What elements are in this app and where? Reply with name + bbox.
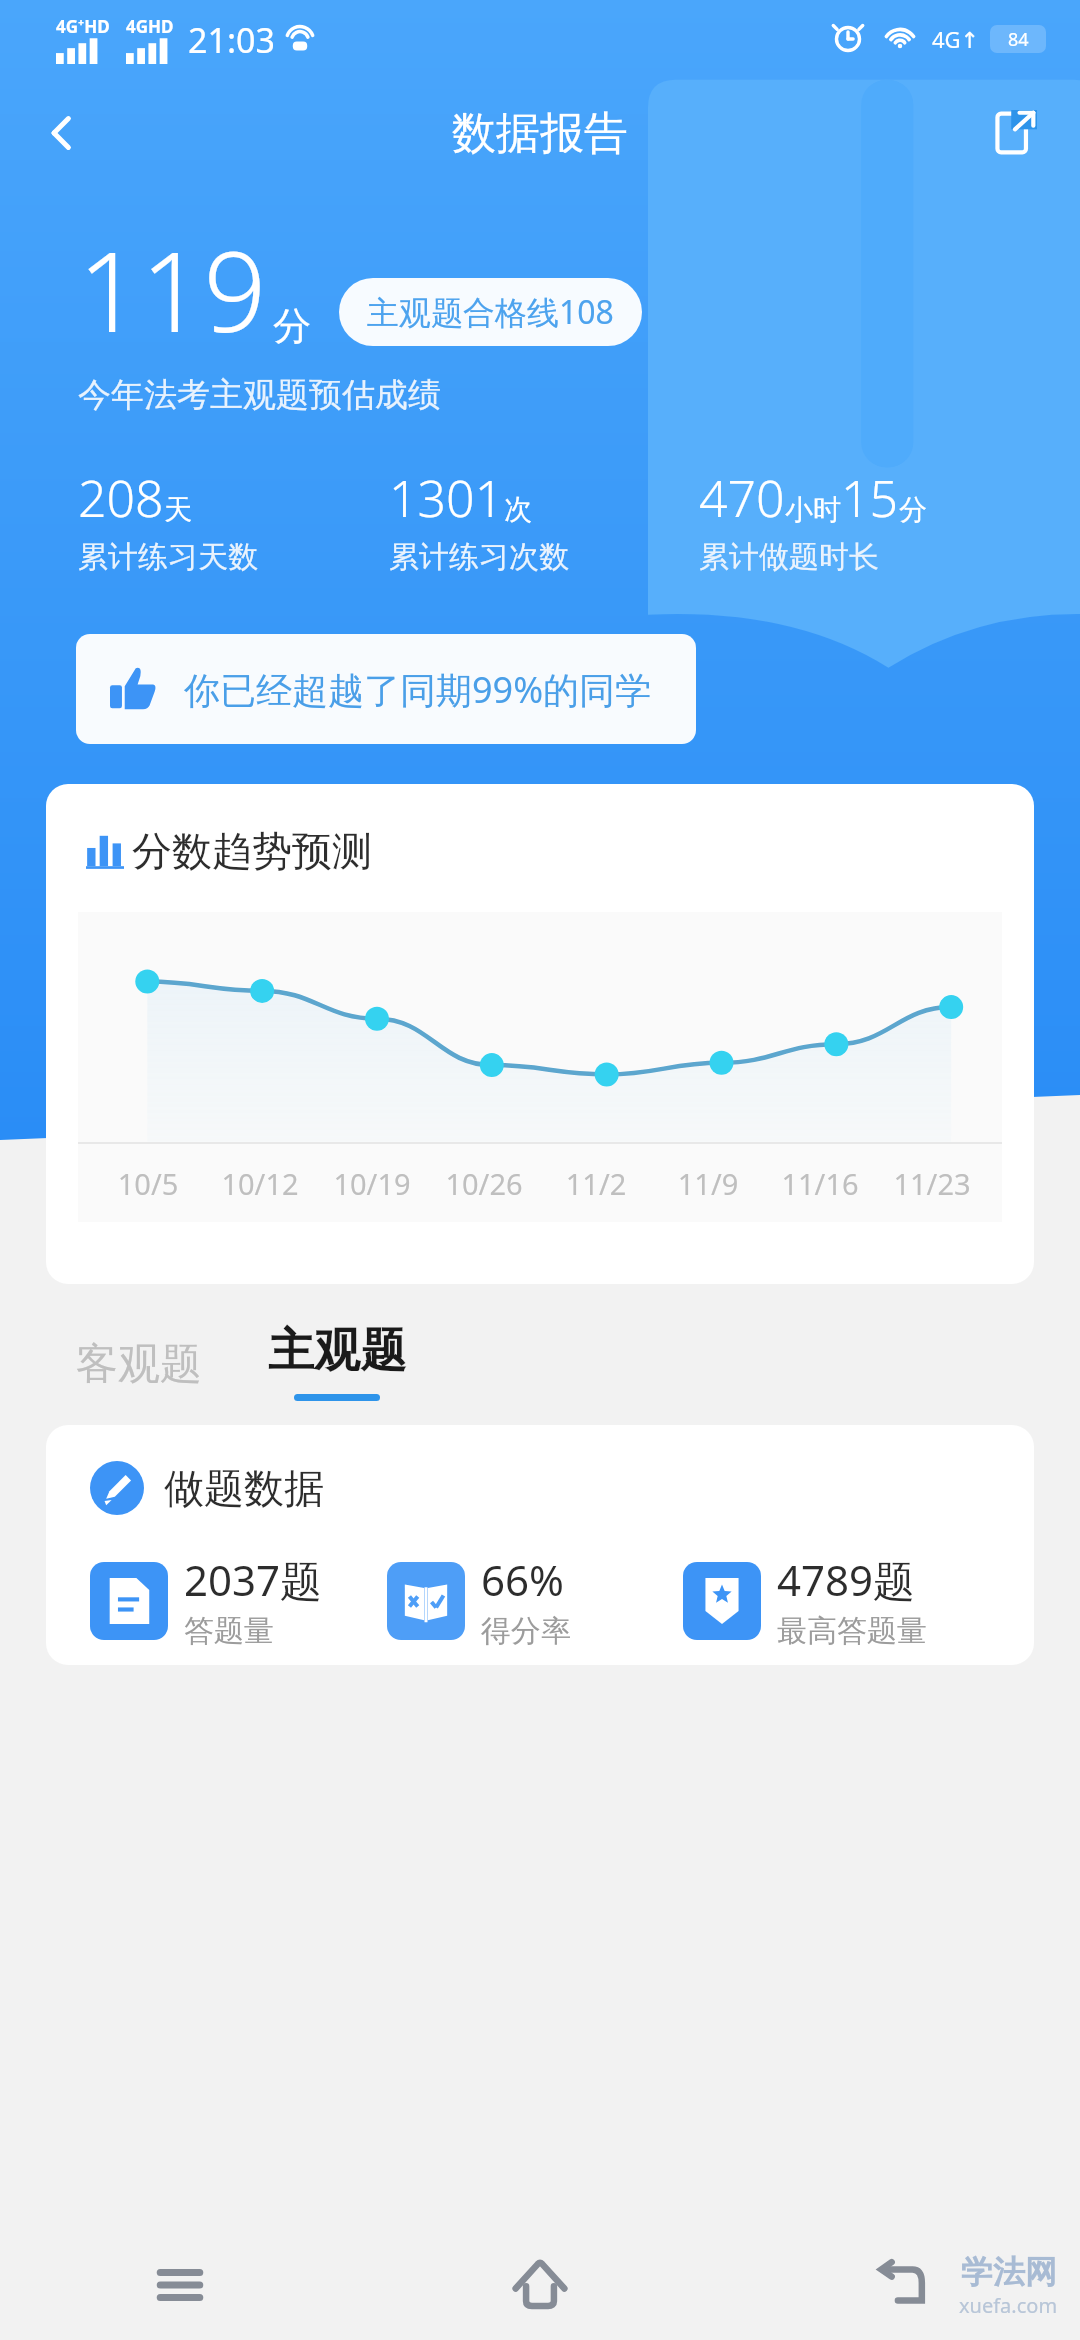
staticText: 得分率 [481, 1612, 571, 1650]
staticText: 4G↑ [932, 24, 980, 54]
staticText: 分数趋势预测 [132, 826, 372, 876]
staticText: 累计练习次数 [389, 538, 569, 576]
staticText: 66% [481, 1551, 564, 1608]
staticText: 11/23 [876, 1164, 988, 1203]
staticText: 4GHD [126, 15, 174, 38]
staticText: 做题数据 [164, 1463, 324, 1513]
button[interactable]: Back [720, 2230, 1080, 2340]
staticText: 10/5 [92, 1164, 204, 1203]
staticText: 数据报告 [452, 106, 628, 161]
staticText: 11/9 [652, 1164, 764, 1203]
staticText: 主观题合格线108 [367, 290, 614, 334]
staticText: 1301 [389, 464, 504, 532]
staticText: 累计练习天数 [78, 538, 258, 576]
staticText: xuefa.com [959, 2292, 1058, 2319]
button[interactable]: 主观题 [254, 1322, 420, 1401]
staticText: 最高答题量 [777, 1612, 927, 1650]
staticText: 11/2 [540, 1164, 652, 1203]
staticText: 2037题 [184, 1551, 323, 1608]
staticText: 21:03 [188, 17, 275, 63]
staticText: 次 [504, 492, 532, 527]
button[interactable]: Share [972, 91, 1056, 175]
staticText: 470 [699, 464, 785, 532]
staticText: 11/16 [764, 1164, 876, 1203]
staticText: 10/12 [204, 1164, 316, 1203]
staticText: 你已经超越了同期99%的同学 [184, 665, 652, 714]
button[interactable]: Recents [0, 2230, 360, 2340]
staticText: 今年法考主观题预估成绩 [78, 374, 441, 416]
staticText: 208 [78, 464, 164, 532]
staticText: 学法网 [961, 2252, 1057, 2292]
staticText: 小时 [785, 492, 841, 527]
staticText: 累计做题时长 [699, 538, 879, 576]
button[interactable]: 主观题合格线108 [339, 278, 642, 346]
button[interactable]: Home [360, 2230, 720, 2340]
staticText: 分 [899, 492, 927, 527]
staticText: 4G⁺HD [56, 15, 110, 38]
button[interactable]: 你已经超越了同期99%的同学 [76, 634, 696, 744]
staticText: 10/26 [428, 1164, 540, 1203]
button[interactable]: Back [20, 91, 104, 175]
staticText: 119 [78, 214, 267, 364]
staticText: 主观题 [268, 1322, 406, 1380]
button[interactable]: 客观题 [62, 1328, 216, 1401]
staticText: 天 [164, 492, 192, 527]
staticText: 客观题 [76, 1338, 202, 1391]
staticText: 84 [1008, 27, 1029, 52]
staticText: 10/19 [316, 1164, 428, 1203]
staticText: 分 [273, 302, 311, 350]
staticText: 4789题 [777, 1551, 916, 1608]
staticText: 15 [841, 464, 899, 532]
staticText: 答题量 [184, 1612, 274, 1650]
